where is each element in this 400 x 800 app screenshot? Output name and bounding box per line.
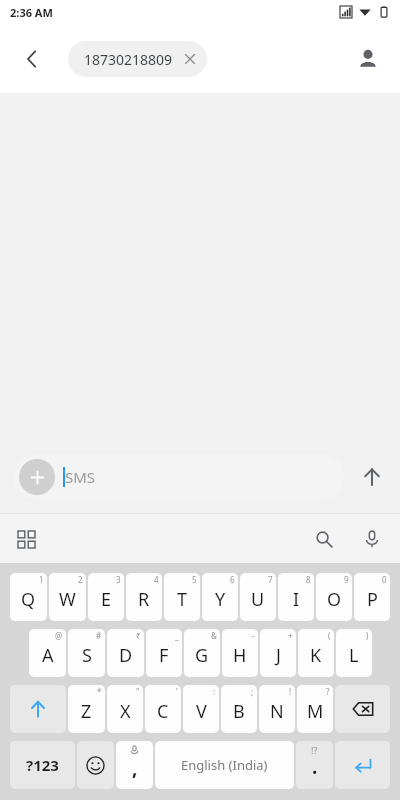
button[interactable]: 0 [354,573,390,621]
button[interactable]: , [116,741,153,789]
staticText: D [119,643,133,668]
button[interactable]: & [184,629,220,677]
staticText: 2 [78,574,83,585]
button[interactable]: ) [336,629,372,677]
button[interactable]: Add attachment [19,459,55,495]
staticText: 9 [344,574,349,585]
staticText: Y [215,587,226,612]
staticText: * [97,686,102,697]
button[interactable]: 2 [49,573,86,621]
staticText: 18730218809 [84,50,173,69]
button[interactable]: Enter [335,741,390,789]
button[interactable]: 1 [10,573,47,621]
staticText: ( [328,630,331,641]
button[interactable]: + [260,629,296,677]
button[interactable]: 6 [202,573,238,621]
staticText: C [157,699,169,724]
staticText: - [252,630,255,641]
staticText: 4 [154,574,159,585]
staticText: 6 [230,574,235,585]
button[interactable]: Send [344,449,400,505]
button[interactable]: 5 [164,573,200,621]
staticText: R [138,587,150,612]
staticText: & [211,630,217,641]
button[interactable]: ' [145,685,181,733]
button[interactable]: English (India) [155,741,294,789]
staticText: Z [81,699,92,724]
staticText: ? [326,686,330,697]
button[interactable]: # [68,629,105,677]
staticText: ! [289,686,292,697]
staticText: SMS [65,467,96,487]
button[interactable]: * [68,685,105,733]
button[interactable]: _ [146,629,182,677]
staticText: B [233,699,245,724]
button[interactable]: 18730218809 [68,41,207,77]
staticText: O [327,587,342,612]
button[interactable]: Emoji [77,741,114,789]
staticText: U [251,587,265,612]
button[interactable]: ₹ [107,629,144,677]
button[interactable]: 9 [316,573,352,621]
staticText: N [270,699,284,724]
button[interactable]: ; [221,685,257,733]
button[interactable]: " [107,685,143,733]
staticText: ; [251,686,254,697]
button[interactable]: @ [29,629,66,677]
staticText: W [59,587,76,612]
staticText: A [42,643,54,668]
staticText: ) [366,630,369,641]
staticText: L [349,643,359,668]
button[interactable]: Add attachment [14,454,344,500]
button[interactable]: ? [297,685,333,733]
staticText: + [288,630,293,641]
staticText: 8 [306,574,311,585]
staticText: I [293,587,300,612]
staticText: K [310,643,322,668]
staticText: Q [21,587,36,612]
button[interactable]: !? [296,741,333,789]
staticText: H [233,643,247,668]
button[interactable]: Shift [10,685,66,733]
staticText: , [132,755,138,781]
staticText: V [196,699,207,724]
staticText: _ [175,630,179,641]
button[interactable]: 8 [278,573,314,621]
button[interactable]: ( [298,629,334,677]
staticText: ?123 [26,755,59,775]
button[interactable]: : [183,685,219,733]
staticText: M [307,699,324,724]
staticText: F [159,643,169,668]
staticText: English (India) [181,756,268,774]
staticText: J [276,643,281,668]
button[interactable]: ! [259,685,295,733]
button[interactable]: Contact details [348,39,388,79]
button[interactable]: Backspace [335,685,390,733]
button[interactable]: - [222,629,258,677]
button[interactable]: Keyboard apps [8,521,44,557]
staticText: 1 [39,574,44,585]
staticText: : [213,686,216,697]
staticText: . [312,754,318,780]
staticText: X [120,699,131,724]
staticText: T [177,587,188,612]
staticText: 2:36 AM [10,5,53,20]
staticText: @ [55,630,63,641]
button[interactable]: Voice input [354,521,390,557]
staticText: ' [176,686,178,697]
staticText: 0 [382,574,387,585]
staticText: S [82,643,92,668]
staticText: 5 [192,574,197,585]
button[interactable]: ?123 [10,741,75,789]
staticText: P [367,587,378,612]
staticText: 7 [268,574,273,585]
button[interactable]: 7 [240,573,276,621]
button[interactable]: 4 [126,573,162,621]
staticText: " [136,686,140,697]
staticText: G [195,643,209,668]
button[interactable]: Back [14,41,50,77]
button[interactable]: Search [306,521,342,557]
staticText: E [101,587,112,612]
staticText: !? [311,744,318,756]
button[interactable]: 3 [88,573,124,621]
